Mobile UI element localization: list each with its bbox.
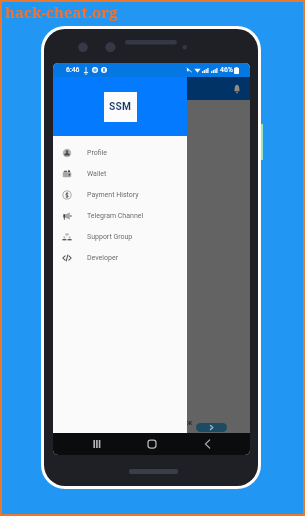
button[interactable]: Telegram Channel <box>53 205 187 226</box>
button[interactable]: Payment History <box>53 184 187 205</box>
button[interactable]: Back <box>189 433 225 455</box>
button[interactable]: Next <box>196 423 227 432</box>
staticText: 6:46 <box>66 66 80 74</box>
staticText: hack-cheat.org <box>5 2 118 22</box>
button[interactable]: Support Group <box>53 226 187 247</box>
button[interactable]: Notifications <box>229 81 245 97</box>
staticText: SSM <box>109 101 132 113</box>
staticText: Wallet <box>87 170 107 178</box>
staticText: Profile <box>87 149 108 157</box>
staticText: Support Group <box>87 233 133 241</box>
staticText: 46% <box>220 66 233 74</box>
staticText: Telegram Channel <box>87 212 144 220</box>
staticText: Payment History <box>87 191 139 199</box>
button[interactable]: Home <box>134 433 170 455</box>
button[interactable]: Wallet <box>53 163 187 184</box>
button[interactable]: Developer <box>53 247 187 268</box>
button[interactable]: Recent apps <box>79 433 115 455</box>
staticText: OK <box>185 420 193 426</box>
button[interactable]: Profile <box>53 142 187 163</box>
staticText: Developer <box>87 254 119 262</box>
